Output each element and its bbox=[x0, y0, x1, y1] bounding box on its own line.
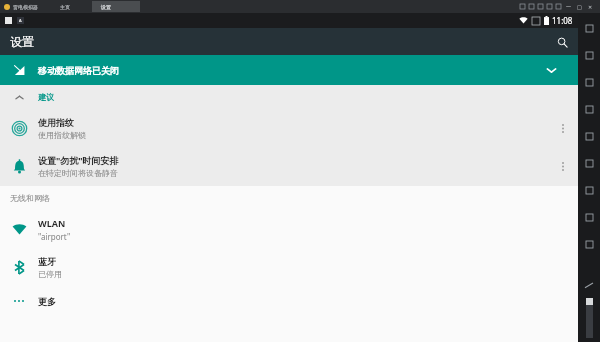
button[interactable]: More options bbox=[548, 109, 578, 147]
staticText: 设置 bbox=[10, 34, 34, 49]
button[interactable]: Maximize bbox=[574, 1, 585, 12]
button[interactable]: Emulator control bbox=[578, 42, 600, 69]
staticText: 11:08 bbox=[552, 15, 573, 26]
staticText: 设置"勿扰"时间安排 bbox=[38, 154, 119, 166]
button[interactable]: Emulator control bbox=[578, 96, 600, 123]
staticText: A bbox=[19, 18, 22, 23]
button[interactable]: 建议 bbox=[0, 85, 578, 109]
button[interactable]: 设置"勿扰"时间安排 bbox=[0, 147, 578, 185]
button[interactable]: 使用指纹 bbox=[0, 109, 578, 147]
button[interactable]: 蓝牙 bbox=[0, 248, 578, 286]
button[interactable]: Emulator control bbox=[578, 150, 600, 177]
button[interactable]: Close bbox=[585, 1, 596, 12]
button[interactable]: Back bbox=[578, 276, 600, 298]
button[interactable]: Search bbox=[550, 30, 574, 54]
button[interactable]: Emulator control bbox=[578, 123, 600, 150]
staticText: 设置 bbox=[101, 4, 111, 10]
staticText: 在特定时间将设备静音 bbox=[38, 168, 118, 178]
button[interactable]: 移动数据网络已关闭 bbox=[0, 55, 578, 85]
staticText: 使用指纹解锁 bbox=[38, 130, 86, 140]
button[interactable]: Minimize bbox=[563, 1, 574, 12]
staticText: 已停用 bbox=[38, 269, 62, 279]
staticText: ✕ bbox=[588, 4, 593, 10]
staticText: 建议 bbox=[38, 92, 54, 102]
button[interactable]: 更多 bbox=[0, 286, 578, 316]
staticText: 使用指纹 bbox=[38, 117, 74, 128]
button[interactable]: Toolbar action bbox=[518, 2, 527, 11]
staticText: □ bbox=[577, 4, 582, 10]
staticText: 雷电模拟器 bbox=[13, 4, 38, 10]
button[interactable]: Emulator control bbox=[578, 231, 600, 258]
button[interactable]: Toolbar action bbox=[527, 2, 536, 11]
staticText: 移动数据网络已关闭 bbox=[38, 65, 119, 76]
staticText: 更多 bbox=[38, 296, 56, 307]
staticText: WLAN bbox=[38, 217, 66, 229]
staticText: 无线和网络 bbox=[10, 193, 50, 203]
button[interactable]: WLAN bbox=[0, 210, 578, 248]
button[interactable]: Emulator control bbox=[578, 204, 600, 231]
staticText: 主页 bbox=[60, 4, 70, 10]
staticText: 蓝牙 bbox=[38, 256, 56, 267]
button[interactable]: 设置 bbox=[92, 1, 140, 12]
staticText: — bbox=[566, 3, 572, 10]
button[interactable]: Toolbar action bbox=[554, 2, 563, 11]
button[interactable]: Emulator control bbox=[578, 69, 600, 96]
staticText: "airport" bbox=[38, 231, 71, 242]
button[interactable]: More options bbox=[548, 147, 578, 185]
button[interactable]: Toolbar action bbox=[536, 2, 545, 11]
button[interactable]: Emulator control bbox=[578, 177, 600, 204]
button[interactable]: Emulator control bbox=[578, 15, 600, 42]
button[interactable]: Toolbar action bbox=[545, 2, 554, 11]
